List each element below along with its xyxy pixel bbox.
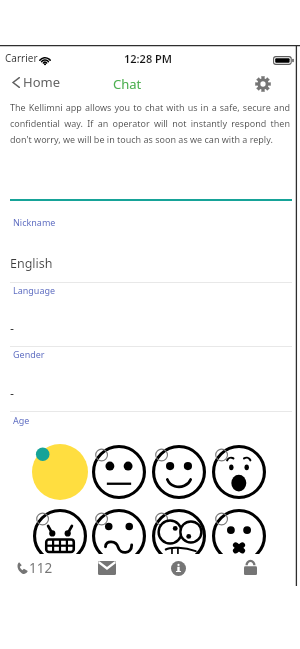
staticText: Home xyxy=(23,73,60,91)
staticText: Carrier xyxy=(5,51,38,65)
button[interactable]: Mood option 1 xyxy=(30,440,90,500)
button[interactable]: Mood option 2 xyxy=(89,440,149,500)
button[interactable]: Mood option 5 xyxy=(30,504,90,554)
button[interactable]: Mood option 6 xyxy=(89,504,149,554)
staticText: Age xyxy=(13,414,30,426)
button[interactable]: Settings xyxy=(255,76,271,92)
button[interactable]: Mood option 3 xyxy=(149,440,209,500)
staticText: 112 xyxy=(29,559,53,577)
staticText: Nickname xyxy=(13,216,56,228)
button[interactable]: 112 xyxy=(16,559,53,577)
button[interactable]: - xyxy=(10,320,292,337)
button[interactable]: English xyxy=(10,255,292,272)
button[interactable]: - xyxy=(10,385,292,402)
button[interactable]: Mood option 4 xyxy=(209,440,269,500)
staticText: Language xyxy=(13,284,56,296)
button[interactable]: Home xyxy=(12,70,60,94)
staticText: 12:28 PM xyxy=(124,51,173,66)
button[interactable]: Information xyxy=(171,561,186,576)
staticText: Chat xyxy=(113,75,142,93)
button[interactable]: Email xyxy=(98,561,116,575)
staticText: The Kellimni app allows you to chat with… xyxy=(10,101,290,145)
button[interactable]: Mood option 7 xyxy=(149,504,209,554)
button[interactable]: Privacy xyxy=(244,560,257,575)
staticText: Gender xyxy=(13,348,45,360)
button[interactable]: Mood option 8 xyxy=(209,504,269,554)
